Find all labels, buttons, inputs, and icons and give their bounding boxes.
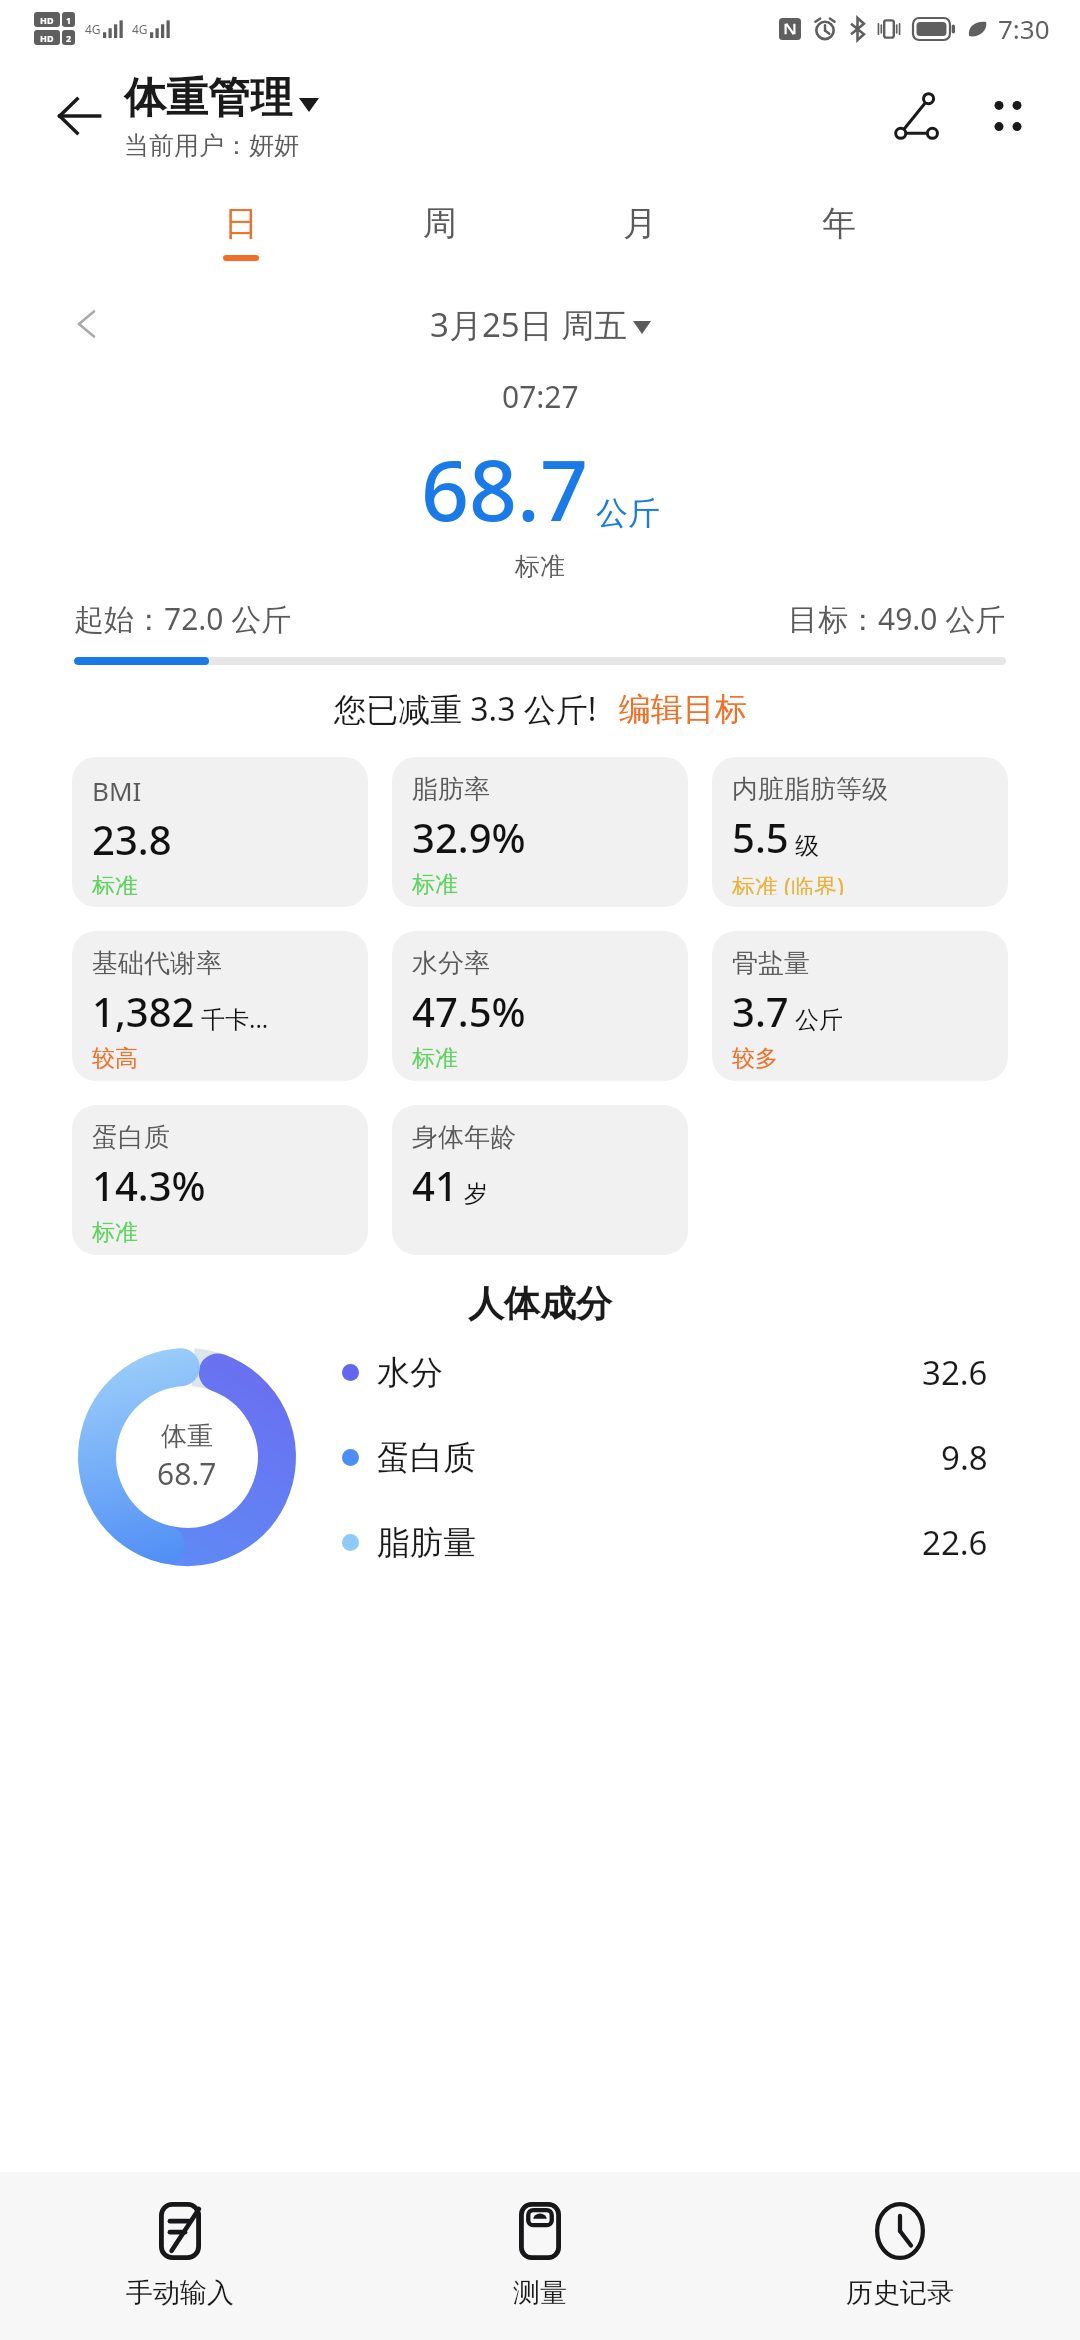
button[interactable]: 骨盐量	[712, 931, 1008, 1081]
staticText: 千卡...	[201, 1002, 269, 1035]
button[interactable]: 蛋白质	[72, 1105, 368, 1255]
button[interactable]: 历史记录	[720, 2172, 1080, 2340]
button[interactable]: 月	[604, 196, 676, 267]
staticText: 2	[66, 32, 72, 44]
staticText: 脂肪量	[377, 1522, 476, 1564]
staticText: 年	[822, 202, 856, 245]
staticText: BMI	[92, 773, 142, 808]
staticText: 级	[795, 831, 819, 861]
staticText: 标准	[515, 551, 565, 582]
staticText: 3月25日 周五	[430, 302, 628, 347]
staticText: 32.6	[922, 1350, 988, 1395]
button[interactable]: 编辑目标	[619, 689, 747, 729]
staticText: 水分	[377, 1352, 443, 1394]
staticText: 内脏脂肪等级	[732, 773, 888, 806]
staticText: 脂肪率	[412, 773, 490, 806]
staticText: 编辑目标	[619, 689, 747, 729]
staticText: HD	[40, 14, 54, 26]
button[interactable]: Previous day	[60, 296, 116, 352]
button[interactable]: 水分率	[392, 931, 688, 1081]
staticText: 您已减重 3.3 公斤!	[334, 687, 597, 731]
staticText: 标准	[92, 1218, 138, 1243]
staticText: 人体成分	[0, 1281, 1080, 1326]
button[interactable]: 内脏脂肪等级	[712, 757, 1008, 907]
staticText: 标准 (临界)	[732, 870, 844, 895]
button[interactable]: 水分	[342, 1350, 1040, 1395]
staticText: 身体年龄	[412, 1121, 516, 1154]
staticText: 当前用户：妍妍	[124, 130, 299, 161]
staticText: 4G	[85, 21, 101, 37]
staticText: 公斤	[795, 1005, 843, 1035]
button[interactable]: 日	[205, 196, 277, 267]
staticText: 岁	[464, 1179, 488, 1209]
button[interactable]: 年	[803, 196, 875, 267]
button[interactable]: 3月25日 周五	[430, 302, 651, 347]
staticText: 基础代谢率	[92, 947, 222, 980]
staticText: 手动输入	[126, 2276, 234, 2310]
staticText: 3.7	[732, 984, 789, 1038]
staticText: 标准	[92, 872, 138, 895]
staticText: 月	[623, 202, 657, 245]
button[interactable]: 身体年龄	[392, 1105, 688, 1255]
staticText: 14.3%	[92, 1158, 206, 1212]
staticText: 1	[66, 14, 72, 26]
staticText: 68.7	[157, 1453, 217, 1494]
staticText: 22.6	[922, 1520, 988, 1565]
staticText: 32.9%	[412, 810, 526, 864]
staticText: 水分率	[412, 947, 490, 980]
staticText: 7:30	[998, 11, 1050, 46]
button[interactable]: 脂肪率	[392, 757, 688, 907]
button[interactable]: 测量	[360, 2172, 720, 2340]
button[interactable]: More options	[970, 78, 1046, 154]
staticText: 目标：49.0 公斤	[788, 598, 1006, 639]
button[interactable]: BMI	[72, 757, 368, 907]
staticText: 体重管理	[124, 72, 292, 125]
staticText: 68.7	[421, 431, 588, 545]
staticText: 起始：72.0 公斤	[74, 598, 292, 639]
staticText: 周	[423, 202, 457, 245]
staticText: 1,382	[92, 984, 195, 1038]
button[interactable]: 体重管理	[124, 72, 319, 125]
button[interactable]: 周	[404, 196, 476, 267]
staticText: 标准	[412, 1044, 458, 1069]
staticText: 日	[224, 202, 258, 245]
button[interactable]: 手动输入	[0, 2172, 360, 2340]
staticText: 历史记录	[846, 2276, 954, 2310]
staticText: 蛋白质	[377, 1437, 476, 1479]
staticText: HD	[40, 32, 54, 44]
staticText: 较高	[92, 1044, 138, 1069]
staticText: 测量	[513, 2276, 567, 2310]
staticText: 41	[412, 1158, 458, 1212]
staticText: 9.8	[941, 1435, 988, 1480]
staticText: 23.8	[92, 812, 172, 866]
staticText: 07:27	[502, 376, 579, 417]
button[interactable]: 蛋白质	[342, 1435, 1040, 1480]
staticText: 4G	[132, 21, 148, 37]
staticText: 体重	[161, 1420, 213, 1453]
staticText: 骨盐量	[732, 947, 810, 980]
staticText: 较多	[732, 1044, 778, 1069]
staticText: 公斤	[596, 493, 660, 533]
button[interactable]: 基础代谢率	[72, 931, 368, 1081]
button[interactable]: Share	[880, 78, 956, 154]
button[interactable]: Back	[44, 81, 114, 151]
staticText: 蛋白质	[92, 1121, 170, 1154]
staticText: 标准	[412, 870, 458, 895]
staticText: 5.5	[732, 810, 789, 864]
staticText: 47.5%	[412, 984, 526, 1038]
button[interactable]: 脂肪量	[342, 1520, 1040, 1565]
